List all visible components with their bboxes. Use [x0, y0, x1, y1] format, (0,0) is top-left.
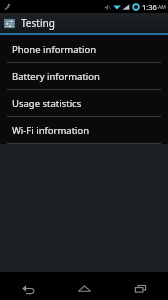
staticText: 1:36: [142, 2, 157, 12]
button[interactable]: Phone information: [0, 36, 168, 62]
button[interactable]: Usage statistics: [0, 90, 168, 116]
staticText: Battery information: [12, 70, 100, 83]
button[interactable]: Home: [56, 276, 112, 300]
staticText: AM: [158, 4, 166, 11]
staticText: Wi-Fi information: [12, 124, 90, 137]
button[interactable]: Battery information: [0, 63, 168, 89]
button[interactable]: Wi-Fi information: [0, 117, 168, 143]
staticText: Testing: [21, 16, 55, 30]
button[interactable]: Back: [0, 276, 56, 300]
staticText: Usage statistics: [12, 97, 82, 110]
button[interactable]: Up: [4, 16, 55, 30]
staticText: Phone information: [12, 43, 97, 56]
button[interactable]: Recents: [112, 276, 168, 300]
